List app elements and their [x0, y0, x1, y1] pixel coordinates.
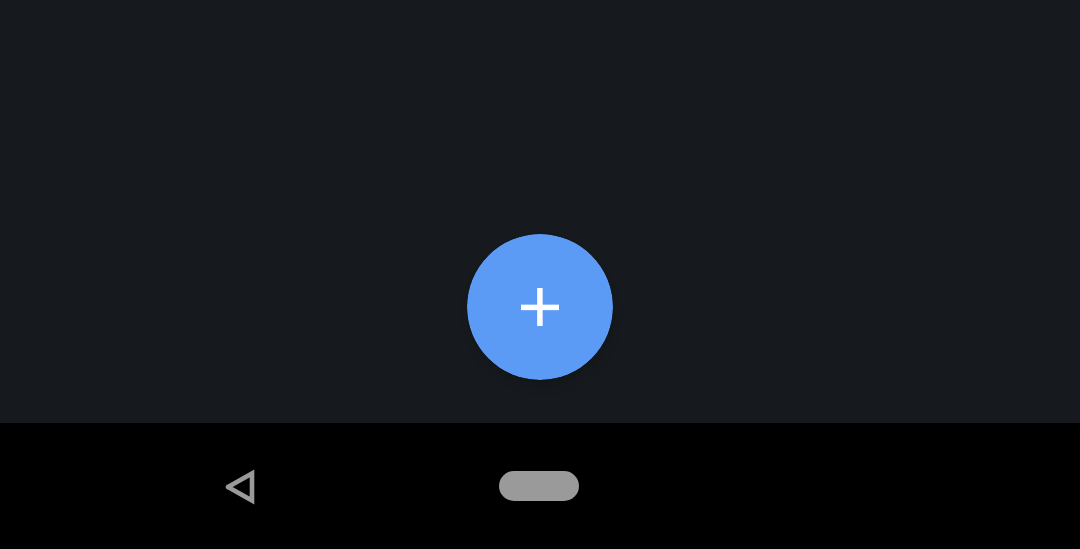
button[interactable]: Back: [200, 447, 280, 527]
button[interactable]: Home: [479, 471, 599, 531]
button[interactable]: Add: [467, 234, 613, 380]
